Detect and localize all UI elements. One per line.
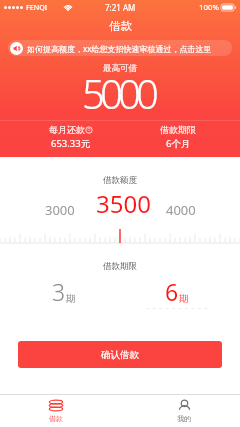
staticText: 6个月 [166, 137, 191, 150]
staticText: 最高可借 [103, 63, 137, 74]
staticText: 借款 [109, 19, 132, 33]
staticText: 借款期限 [103, 261, 137, 272]
button[interactable]: 3 [24, 276, 104, 309]
staticText: 6 [165, 276, 179, 307]
staticText: 4000 [166, 201, 196, 219]
staticText: 7:21 AM [105, 2, 136, 13]
button[interactable]: 如何提高额度，xx给您支招快速审核通过，点击这里 [8, 40, 232, 56]
button[interactable]: 借款 [16, 395, 96, 427]
staticText: 借款额度 [103, 175, 137, 186]
staticText: 如何提高额度，xx给您支招快速审核通过，点击这里 [27, 43, 212, 54]
staticText: 期 [179, 293, 189, 305]
staticText: 3500 [96, 187, 151, 220]
staticText: 653.33元 [51, 137, 91, 150]
staticText: 每月还款 [49, 124, 85, 135]
staticText: 5000 [82, 66, 155, 120]
staticText: FENQI [26, 2, 48, 12]
button[interactable]: 我的 [144, 395, 224, 427]
button[interactable]: 确认借款 [18, 341, 222, 368]
staticText: 确认借款 [101, 349, 139, 361]
staticText: 100% [199, 2, 219, 13]
staticText: 我的 [177, 414, 191, 423]
staticText: 期 [66, 293, 76, 305]
staticText: 借款期限 [160, 124, 196, 135]
staticText: 3 [52, 276, 66, 307]
staticText: 借款 [49, 414, 63, 423]
button[interactable]: 6 [137, 276, 217, 309]
staticText: 3000 [45, 201, 75, 219]
